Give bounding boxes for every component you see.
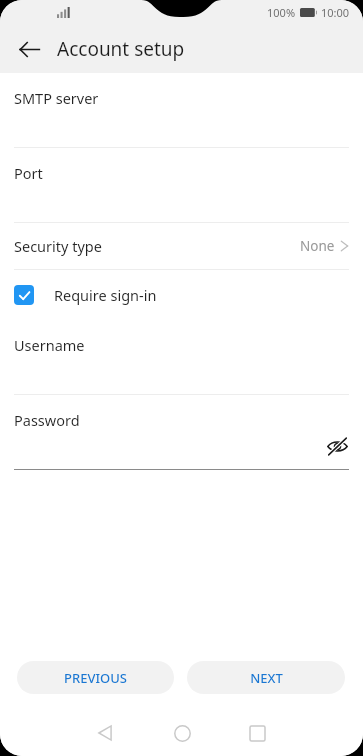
staticText: Account setup <box>57 36 185 62</box>
staticText: 10:00 <box>321 5 350 20</box>
button[interactable]: Username <box>0 320 363 395</box>
staticText: PREVIOUS <box>64 669 127 687</box>
staticText: Port <box>14 163 43 183</box>
staticText: NEXT <box>250 669 283 687</box>
staticText: None <box>300 237 335 255</box>
button[interactable]: PREVIOUS <box>17 661 174 694</box>
staticText: Username <box>14 335 85 355</box>
staticText: Security type <box>14 236 102 256</box>
button[interactable]: Recents <box>238 714 276 752</box>
button[interactable]: Show password <box>323 432 351 460</box>
button[interactable]: Back <box>10 30 48 68</box>
staticText: 100% <box>267 5 296 20</box>
button[interactable]: Require sign-in <box>0 270 363 320</box>
button[interactable]: SMTP server <box>0 73 363 148</box>
staticText: SMTP server <box>14 88 99 108</box>
button[interactable]: Back <box>86 714 124 752</box>
button[interactable]: Security type <box>0 223 363 270</box>
button[interactable]: NEXT <box>187 661 345 694</box>
staticText: Require sign-in <box>54 285 157 305</box>
button[interactable]: Port <box>0 148 363 223</box>
staticText: Password <box>14 410 80 430</box>
button[interactable]: Home <box>163 714 201 752</box>
button[interactable]: Password <box>0 395 363 470</box>
